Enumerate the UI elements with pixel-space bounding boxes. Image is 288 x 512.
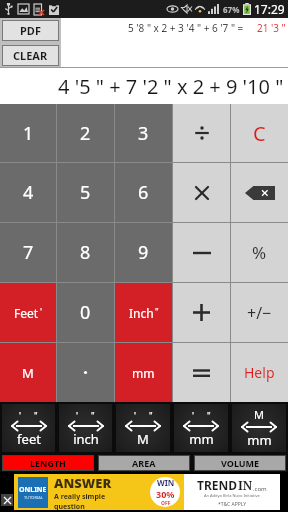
staticText: 1: [23, 121, 34, 146]
staticText: *T&C APPLY: [218, 501, 247, 508]
button[interactable]: 4: [0, 163, 56, 222]
button[interactable]: Feet: [0, 283, 56, 342]
staticText: WIN: [157, 477, 175, 488]
staticText: mm: [132, 365, 155, 381]
button[interactable]: Inch: [115, 283, 172, 342]
staticText: M: [254, 407, 264, 422]
button[interactable]: Divide: [173, 104, 230, 162]
button[interactable]: Convert M: [116, 404, 170, 452]
staticText: TREND: [197, 477, 238, 493]
staticText: ': [134, 409, 137, 421]
staticText: ": [34, 409, 38, 421]
staticText: feet: [17, 430, 41, 448]
staticText: %: [252, 241, 267, 264]
staticText: question: [54, 502, 85, 510]
button[interactable]: Convert inch: [59, 404, 112, 452]
staticText: TUTORIAL: [24, 495, 43, 500]
button[interactable]: 1: [0, 104, 56, 162]
staticText: PDF: [20, 23, 41, 38]
staticText: 17:29: [254, 1, 285, 17]
staticText: 5 '8 " x 2 + 3 '4 " + 6 '7 " =: [128, 21, 246, 35]
button[interactable]: Decimal point: [57, 343, 114, 402]
button[interactable]: C: [231, 104, 288, 162]
staticText: ': [19, 409, 22, 421]
staticText: ': [192, 409, 195, 421]
button[interactable]: 7: [0, 223, 56, 282]
staticText: M: [22, 364, 34, 382]
staticText: mm: [189, 430, 214, 448]
staticText: 8: [80, 240, 91, 265]
staticText: 2: [80, 121, 91, 146]
staticText: Feet: [14, 305, 39, 321]
staticText: C: [253, 120, 266, 147]
staticText: ': [40, 305, 43, 317]
button[interactable]: 9: [115, 223, 172, 282]
staticText: Help: [244, 363, 275, 382]
button[interactable]: 0: [57, 283, 114, 342]
button[interactable]: Close ad: [1, 494, 13, 506]
staticText: 21 '3 ": [257, 21, 286, 35]
button[interactable]: M: [0, 343, 56, 402]
staticText: 6: [138, 180, 149, 205]
button[interactable]: 6: [115, 163, 172, 222]
button[interactable]: Convert feet: [2, 404, 55, 452]
button[interactable]: Plus: [173, 283, 230, 342]
staticText: 7: [23, 240, 34, 265]
staticText: 3: [138, 121, 149, 146]
staticText: 0: [80, 300, 91, 325]
button[interactable]: 3: [115, 104, 172, 162]
button[interactable]: Equals: [173, 343, 230, 402]
button[interactable]: PDF: [2, 20, 59, 41]
staticText: CLEAR: [13, 48, 48, 63]
staticText: mm: [247, 431, 272, 449]
button[interactable]: 5: [57, 163, 114, 222]
staticText: A really simple: [54, 492, 106, 502]
button[interactable]: %: [231, 223, 288, 282]
staticText: ": [91, 409, 95, 421]
staticText: ": [149, 409, 153, 421]
staticText: 5: [80, 180, 91, 205]
staticText: IN: [238, 477, 253, 493]
staticText: .com: [253, 485, 267, 493]
button[interactable]: Help: [231, 343, 288, 402]
button[interactable]: Backspace: [231, 163, 288, 222]
button[interactable]: Convert mm: [232, 404, 286, 452]
staticText: 4: [23, 180, 34, 205]
staticText: +/−: [247, 302, 272, 324]
staticText: ": [155, 305, 159, 317]
button[interactable]: +/−: [231, 283, 288, 342]
staticText: ONLINE: [19, 485, 47, 495]
staticText: inch: [73, 430, 99, 448]
staticText: VOLUME: [221, 457, 260, 469]
staticText: OFF: [161, 500, 171, 507]
staticText: ANSWER: [54, 474, 112, 492]
button[interactable]: Convert mm: [174, 404, 228, 452]
staticText: LENGTH: [30, 457, 66, 469]
staticText: Inch: [129, 305, 154, 321]
staticText: 67%: [223, 4, 240, 15]
button[interactable]: mm: [115, 343, 172, 402]
button[interactable]: VOLUME: [194, 455, 286, 471]
staticText: ': [76, 409, 79, 421]
button[interactable]: LENGTH: [2, 455, 94, 471]
button[interactable]: 8: [57, 223, 114, 282]
button[interactable]: CLEAR: [2, 45, 59, 66]
button[interactable]: 2: [57, 104, 114, 162]
staticText: 9: [138, 240, 149, 265]
staticText: 4 '5 " + 7 '2 " x 2 + 9 '10 ": [58, 73, 284, 100]
button[interactable]: Minus: [173, 223, 230, 282]
staticText: 30%: [156, 488, 175, 500]
button[interactable]: Multiply: [173, 163, 230, 222]
button[interactable]: AREA: [98, 455, 190, 471]
staticText: M: [137, 430, 149, 448]
staticText: An Aditya Birla Nuvo Initiative: [204, 493, 260, 498]
staticText: AREA: [132, 457, 156, 469]
staticText: ": [207, 409, 211, 421]
